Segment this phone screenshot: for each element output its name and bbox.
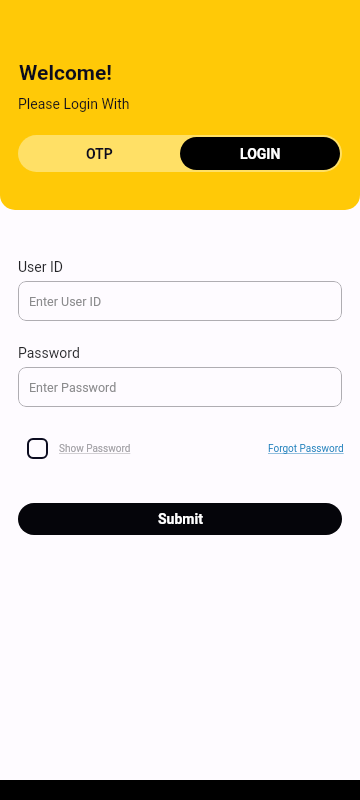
button[interactable]: Show password checkbox — [27, 438, 131, 459]
button[interactable]: Enter Password — [18, 367, 342, 407]
button[interactable]: Submit — [18, 503, 342, 535]
button[interactable]: LOGIN — [180, 137, 340, 170]
staticText: Password — [18, 345, 80, 361]
staticText: User ID — [18, 259, 63, 275]
button[interactable]: Enter User ID — [18, 281, 342, 321]
staticText: Enter Password — [29, 380, 117, 395]
staticText: Enter User ID — [29, 294, 102, 309]
staticText: Welcome! — [19, 61, 113, 86]
staticText: Submit — [158, 511, 203, 527]
staticText: Show Password — [59, 443, 131, 455]
staticText: LOGIN — [240, 146, 281, 162]
button[interactable]: OTP — [18, 135, 180, 172]
button[interactable]: Forgot Password — [268, 443, 344, 455]
staticText: Please Login With — [18, 96, 130, 112]
other: Show password checkbox — [27, 438, 48, 459]
staticText: Forgot Password — [268, 443, 344, 455]
staticText: OTP — [86, 146, 113, 162]
